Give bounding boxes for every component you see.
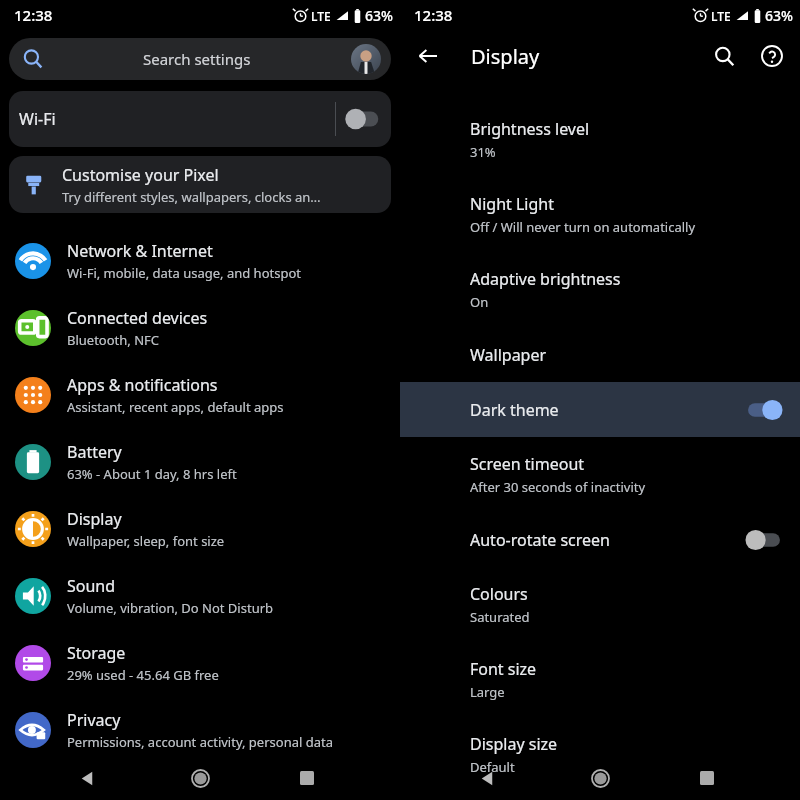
staticText: 31% xyxy=(470,143,496,161)
staticText: Night Light xyxy=(470,193,554,215)
button[interactable]: Wallpaper xyxy=(400,327,800,382)
button[interactable]: Recent apps xyxy=(690,761,724,795)
staticText: Wi-Fi, mobile, data usage, and hotspot xyxy=(67,264,301,282)
staticText: LTE xyxy=(711,8,731,24)
button[interactable]: Brightness level xyxy=(400,102,800,177)
button[interactable]: Auto-rotate screen xyxy=(400,512,800,567)
button[interactable]: Battery xyxy=(0,428,400,495)
staticText: LTE xyxy=(311,8,331,24)
button[interactable]: Night Light xyxy=(400,177,800,252)
staticText: After 30 seconds of inactivity xyxy=(470,478,646,496)
staticText: Volume, vibration, Do Not Disturb xyxy=(67,599,274,617)
button[interactable]: Privacy xyxy=(0,696,400,763)
staticText: Privacy xyxy=(67,709,121,731)
staticText: Display xyxy=(67,508,122,530)
button[interactable]: Colours xyxy=(400,567,800,642)
button[interactable]: Adaptive brightness xyxy=(400,252,800,327)
button[interactable]: Sound xyxy=(0,562,400,629)
staticText: Battery xyxy=(67,441,122,463)
staticText: Try different styles, wallpapers, clocks… xyxy=(62,188,321,206)
staticText: 12:38 xyxy=(14,5,53,25)
staticText: Screen timeout xyxy=(470,453,585,475)
button[interactable]: Search xyxy=(9,38,391,80)
staticText: Display xyxy=(471,43,540,70)
staticText: Sound xyxy=(67,575,116,597)
button[interactable]: Wi-Fi toggle xyxy=(336,91,391,147)
button[interactable]: Recent apps xyxy=(290,761,324,795)
button[interactable]: Storage xyxy=(0,629,400,696)
staticText: Display size xyxy=(470,733,558,755)
button[interactable]: Dark theme toggle xyxy=(742,395,786,425)
staticText: Storage xyxy=(67,642,126,664)
staticText: Network & Internet xyxy=(67,240,213,262)
button[interactable]: Back xyxy=(410,38,446,74)
staticText: Off / Will never turn on automatically xyxy=(470,218,696,236)
staticText: Permissions, account activity, personal … xyxy=(67,733,333,751)
button[interactable]: Wi-Fi xyxy=(9,91,391,147)
staticText: 63% - About 1 day, 8 hrs left xyxy=(67,465,237,483)
button[interactable]: Back xyxy=(70,761,104,795)
staticText: Wallpaper, sleep, font size xyxy=(67,532,225,550)
staticText: Colours xyxy=(470,583,528,605)
staticText: Customise your Pixel xyxy=(62,164,219,186)
staticText: Apps & notifications xyxy=(67,374,218,396)
button[interactable]: Help xyxy=(752,36,792,76)
other: Search xyxy=(23,49,43,69)
button[interactable]: Apps & notifications xyxy=(0,361,400,428)
staticText: Search settings xyxy=(143,49,251,69)
staticText: Assistant, recent apps, default apps xyxy=(67,398,284,416)
staticText: Font size xyxy=(470,658,537,680)
button[interactable]: Connected devices xyxy=(0,294,400,361)
staticText: Auto-rotate screen xyxy=(470,529,610,551)
button[interactable]: Back xyxy=(470,761,504,795)
staticText: 12:38 xyxy=(414,5,453,25)
button[interactable]: Home xyxy=(583,761,617,795)
button[interactable]: Display xyxy=(0,495,400,562)
button[interactable]: Screen timeout xyxy=(400,437,800,512)
staticText: Bluetooth, NFC xyxy=(67,331,160,349)
staticText: Dark theme xyxy=(470,399,559,421)
staticText: On xyxy=(470,293,489,311)
button[interactable]: Auto-rotate screen toggle xyxy=(742,525,786,555)
button[interactable]: Dark theme xyxy=(400,382,800,437)
staticText: 63% xyxy=(365,6,393,25)
button[interactable]: Account xyxy=(351,44,381,74)
button[interactable]: Customise your Pixel xyxy=(9,156,391,213)
staticText: Connected devices xyxy=(67,307,208,329)
staticText: Brightness level xyxy=(470,118,590,140)
staticText: Saturated xyxy=(470,608,530,626)
button[interactable]: Search xyxy=(704,36,744,76)
staticText: Default xyxy=(470,758,515,776)
button[interactable]: Network & Internet xyxy=(0,227,400,294)
staticText: Adaptive brightness xyxy=(470,268,621,290)
button[interactable]: Home xyxy=(183,761,217,795)
staticText: 63% xyxy=(765,6,793,25)
button[interactable]: Font size xyxy=(400,642,800,717)
button[interactable]: Display size xyxy=(400,717,800,792)
staticText: 29% used - 45.64 GB free xyxy=(67,666,219,684)
staticText: Wi-Fi xyxy=(19,108,56,130)
staticText: Wallpaper xyxy=(470,344,547,366)
staticText: Large xyxy=(470,683,505,701)
